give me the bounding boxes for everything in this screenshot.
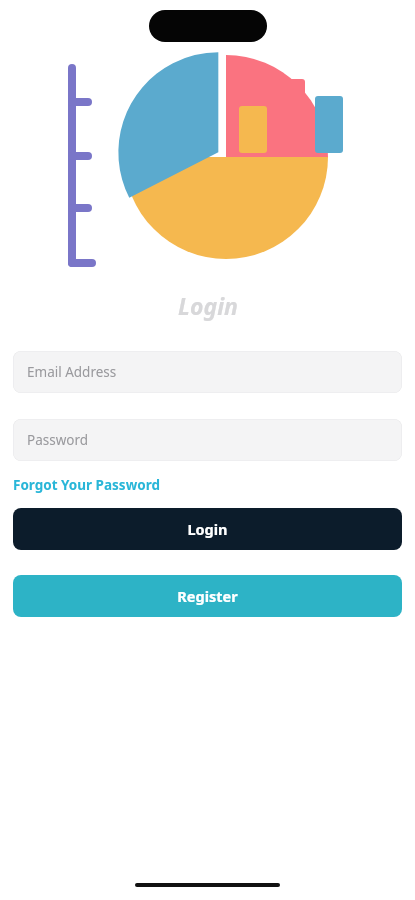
- button[interactable]: Password: [13, 419, 402, 461]
- button[interactable]: Email Address: [13, 351, 402, 393]
- button[interactable]: Register: [13, 575, 402, 617]
- button[interactable]: Forgot Your Password: [13, 475, 160, 495]
- staticText: Login: [178, 290, 238, 321]
- staticText: Password: [27, 431, 89, 449]
- staticText: Register: [177, 586, 238, 606]
- button[interactable]: Login: [13, 508, 402, 550]
- staticText: Forgot Your Password: [13, 476, 160, 494]
- staticText: Email Address: [27, 363, 117, 381]
- staticText: Login: [187, 519, 228, 539]
